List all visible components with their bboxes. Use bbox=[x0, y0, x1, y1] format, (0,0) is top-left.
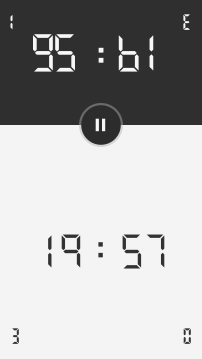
button[interactable]: Pause bbox=[79, 103, 123, 147]
button[interactable]: Opponent clock 19:56 bbox=[0, 0, 202, 125]
button[interactable]: Your clock 19:57 bbox=[0, 125, 202, 359]
